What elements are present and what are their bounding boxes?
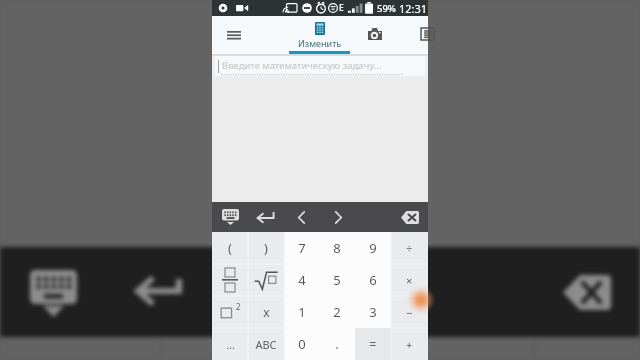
button[interactable]: = xyxy=(355,328,391,360)
staticText: ( xyxy=(228,239,232,257)
staticText: + xyxy=(406,337,413,352)
button[interactable]: Next xyxy=(324,202,352,232)
button[interactable]: ( xyxy=(212,232,248,264)
staticText: 6 xyxy=(369,271,377,289)
staticText: 12:31 xyxy=(399,1,428,16)
button[interactable]: ) xyxy=(248,232,284,264)
button[interactable]: power xyxy=(212,296,248,328)
button[interactable]: 0 xyxy=(284,328,319,360)
button[interactable]: fraction xyxy=(212,264,248,296)
button[interactable]: 2 xyxy=(319,296,355,328)
button[interactable]: … xyxy=(212,328,248,360)
button[interactable]: ABC xyxy=(248,328,284,360)
staticText: 2 xyxy=(333,303,341,321)
button[interactable]: Camera xyxy=(353,16,397,54)
button[interactable]: square root xyxy=(248,264,284,296)
button[interactable]: Изменить xyxy=(289,16,350,54)
staticText: . xyxy=(335,335,339,353)
staticText: x xyxy=(263,304,270,320)
staticText: 7 xyxy=(298,239,306,257)
button[interactable]: ÷ xyxy=(391,232,428,264)
button[interactable]: 3 xyxy=(355,296,391,328)
button[interactable]: Notebook xyxy=(406,16,428,54)
staticText: 1 xyxy=(298,303,306,321)
button[interactable]: . xyxy=(319,328,355,360)
button[interactable]: Enter xyxy=(250,202,282,232)
staticText: ÷ xyxy=(406,241,413,256)
button[interactable]: 8 xyxy=(319,232,355,264)
staticText: … xyxy=(226,337,235,352)
button[interactable]: 1 xyxy=(284,296,319,328)
staticText: 8 xyxy=(333,239,341,257)
staticText: 5 xyxy=(333,271,341,289)
staticText: 4 xyxy=(298,271,306,289)
staticText: 9 xyxy=(369,239,377,257)
button[interactable]: Введите математическую задачу... xyxy=(215,56,425,76)
staticText: − xyxy=(406,305,413,320)
button[interactable]: × xyxy=(391,264,428,296)
staticText: 3 xyxy=(369,303,377,321)
button[interactable]: 4 xyxy=(284,264,319,296)
button[interactable]: 9 xyxy=(355,232,391,264)
button[interactable]: + xyxy=(391,328,428,360)
staticText: 2 xyxy=(236,301,241,312)
button[interactable]: Previous xyxy=(287,202,315,232)
button[interactable]: Menu xyxy=(220,21,248,49)
staticText: ) xyxy=(264,239,268,257)
staticText: 0 xyxy=(298,335,306,353)
staticText: × xyxy=(406,273,413,288)
staticText: ABC xyxy=(255,337,277,352)
button[interactable]: 5 xyxy=(319,264,355,296)
staticText: = xyxy=(369,335,377,353)
staticText: Изменить xyxy=(298,37,342,49)
staticText: E xyxy=(339,2,344,14)
button[interactable]: − xyxy=(391,296,428,328)
button[interactable]: Backspace xyxy=(394,202,425,232)
staticText: Введите математическую задачу... xyxy=(222,59,382,72)
button[interactable]: 7 xyxy=(284,232,319,264)
button[interactable]: x xyxy=(248,296,284,328)
staticText: 59% xyxy=(377,2,396,15)
button[interactable]: 6 xyxy=(355,264,391,296)
button[interactable]: Hide keyboard xyxy=(214,202,246,232)
